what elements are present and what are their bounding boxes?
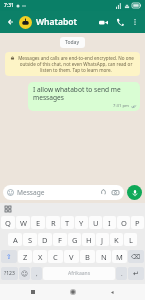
button[interactable]: J [96, 233, 109, 246]
staticText: Afrikaans [68, 270, 91, 277]
staticText: H [86, 235, 92, 245]
staticText: ⇧ [6, 253, 12, 261]
staticText: O [121, 218, 127, 228]
staticText: Messages and calls are end-to-end encryp… [17, 55, 135, 73]
button[interactable]: N [96, 250, 111, 263]
button[interactable]: Afrikaans [43, 267, 115, 280]
button[interactable]: Home [66, 285, 80, 299]
staticText: Message [17, 188, 99, 197]
staticText: S [28, 235, 33, 245]
staticText: D [42, 235, 48, 245]
button[interactable]: Back [105, 285, 119, 299]
staticText: W [20, 218, 27, 228]
button[interactable]: ☺ [19, 267, 30, 280]
button[interactable]: R [46, 216, 60, 229]
button[interactable]: More options [129, 16, 141, 28]
button[interactable]: Whatabot [36, 16, 96, 28]
button[interactable]: Messages and calls are end-to-end encryp… [5, 52, 140, 76]
button[interactable]: E [31, 216, 45, 229]
staticText: Today [65, 39, 80, 46]
button[interactable]: Attach [99, 188, 108, 197]
button[interactable]: W [16, 216, 30, 229]
button[interactable]: ↵ [128, 267, 144, 280]
button[interactable]: F [53, 233, 67, 246]
staticText: T [65, 218, 70, 228]
button[interactable]: I allow whatabot to send me messages [28, 82, 140, 111]
button[interactable]: Y [75, 216, 88, 229]
button[interactable]: Voice message [127, 185, 142, 200]
button[interactable]: U [89, 216, 102, 229]
button[interactable]: ⇧ [1, 250, 17, 263]
staticText: 7:31 [4, 2, 14, 9]
button[interactable]: S [23, 233, 37, 246]
staticText: C [53, 252, 58, 262]
button[interactable]: A [8, 233, 22, 246]
button[interactable]: Camera [111, 188, 120, 197]
staticText: F [58, 235, 62, 245]
staticText: Z [23, 252, 28, 262]
staticText: K [114, 235, 119, 245]
button[interactable] [19, 16, 32, 29]
button[interactable]: . [116, 267, 127, 280]
staticText: G [72, 235, 78, 245]
button[interactable]: I [103, 216, 116, 229]
button[interactable]: L [124, 233, 137, 246]
staticText: ⌫ [131, 253, 141, 261]
staticText: M [116, 252, 123, 262]
button[interactable]: O [117, 216, 130, 229]
button[interactable]: , [31, 267, 42, 280]
staticText: L [129, 235, 133, 245]
button[interactable]: ⌫ [128, 250, 144, 263]
staticText: V [69, 252, 74, 262]
staticText: ↵ [133, 270, 139, 278]
button[interactable]: Q [1, 216, 15, 229]
button[interactable]: C [48, 250, 63, 263]
staticText: E [36, 218, 41, 228]
button[interactable]: Video call [96, 15, 110, 29]
staticText: X [38, 252, 43, 262]
staticText: J [101, 235, 104, 245]
button[interactable]: Z [18, 250, 32, 263]
staticText: N [101, 252, 107, 262]
staticText: Y [79, 218, 84, 228]
button[interactable]: H [82, 233, 95, 246]
button[interactable]: B [80, 250, 95, 263]
button[interactable]: G [68, 233, 81, 246]
staticText: I allow whatabot to send me messages [33, 85, 136, 102]
staticText: I [108, 218, 111, 228]
button[interactable]: T [61, 216, 74, 229]
button[interactable]: P [131, 216, 144, 229]
button[interactable]: X [33, 250, 47, 263]
staticText: ☺ [21, 270, 28, 278]
staticText: . [121, 270, 123, 278]
staticText: , [36, 270, 38, 278]
staticText: Q [5, 218, 11, 228]
staticText: U [93, 218, 99, 228]
staticText: B [85, 252, 90, 262]
button[interactable]: ?123 [1, 267, 18, 280]
button[interactable]: Keyboard menu [4, 205, 12, 213]
button[interactable]: Message [3, 185, 124, 200]
button[interactable]: V [64, 250, 79, 263]
staticText: R [51, 218, 56, 228]
button[interactable]: Back [4, 15, 18, 29]
staticText: P [135, 218, 140, 228]
button[interactable]: K [110, 233, 123, 246]
staticText: A [13, 235, 18, 245]
staticText: ?123 [4, 270, 15, 277]
button[interactable]: D [38, 233, 52, 246]
staticText: 7:31 pm [113, 103, 129, 109]
button[interactable]: Call [113, 15, 127, 29]
button[interactable]: Recents [26, 285, 40, 299]
button[interactable]: M [112, 250, 127, 263]
